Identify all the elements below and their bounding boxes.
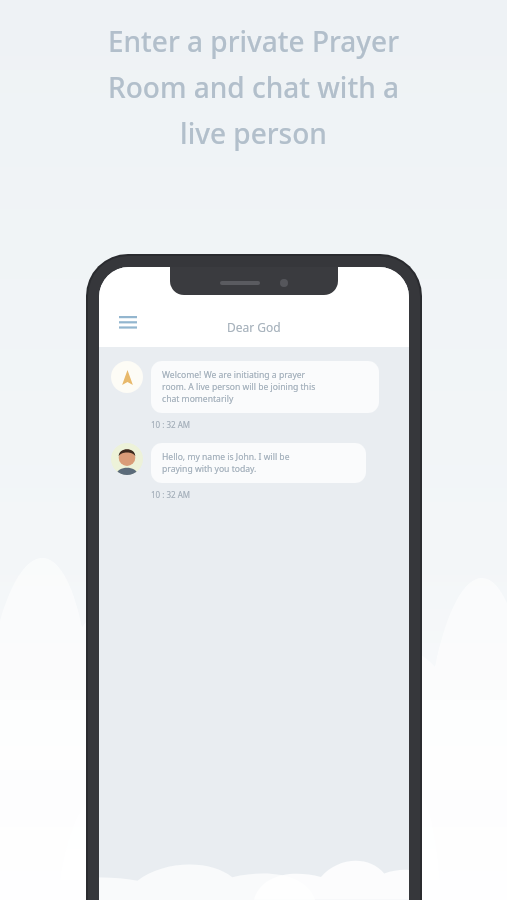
staticText: Hello, my name is John. I will be xyxy=(162,451,290,463)
staticText: Dear God xyxy=(227,319,281,335)
staticText: chat momentarily xyxy=(162,393,234,405)
staticText: praying with you today. xyxy=(162,463,257,475)
staticText: 10 : 32 AM xyxy=(151,489,191,500)
staticText: Enter a private Prayer Room and chat wit… xyxy=(0,22,507,152)
button[interactable]: Welcome! We are initiating a prayer xyxy=(151,361,379,413)
staticText: room. A live person will be joining this xyxy=(162,381,316,393)
staticText: Welcome! We are initiating a prayer xyxy=(162,369,306,381)
staticText: 10 : 32 AM xyxy=(151,419,191,430)
button[interactable]: Hello, my name is John. I will be xyxy=(151,443,366,483)
button[interactable]: Menu xyxy=(111,305,145,339)
